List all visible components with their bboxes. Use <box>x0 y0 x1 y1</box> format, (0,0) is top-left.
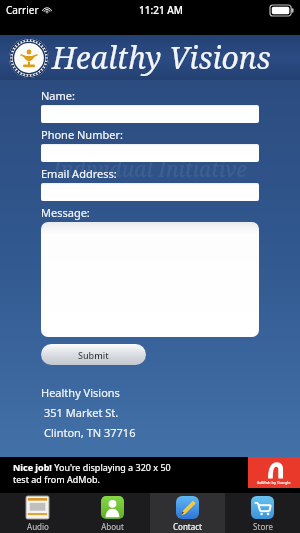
button[interactable]: Submit <box>41 344 146 365</box>
button[interactable] <box>41 105 259 123</box>
staticText: Email Address: <box>41 166 117 181</box>
button[interactable]: Store <box>225 493 300 533</box>
staticText: You're displaying a 320 x 50 <box>52 461 171 473</box>
button[interactable]: About <box>75 493 150 533</box>
button[interactable]: Audio <box>0 493 75 533</box>
staticText: Store <box>253 521 273 532</box>
staticText: Nice job! <box>13 461 52 473</box>
staticText: Individual Initiative <box>53 155 247 184</box>
staticText: Submit <box>78 349 109 361</box>
staticText: Contact <box>173 521 202 532</box>
staticText: Healthy Visions <box>52 37 271 78</box>
staticText: test ad from AdMob. <box>13 473 100 485</box>
staticText: About <box>101 521 124 532</box>
staticText: Message: <box>41 205 90 220</box>
staticText: 351 Market St. <box>44 405 119 420</box>
staticText: Phone Number: <box>41 127 123 142</box>
button[interactable]: Contact <box>150 493 225 533</box>
staticText: 11:21 AM <box>139 3 183 17</box>
staticText: AdMob by Google <box>257 480 291 485</box>
staticText: Clinton, TN 37716 <box>44 425 136 440</box>
staticText: Audio <box>27 521 49 532</box>
staticText: Name: <box>41 88 75 103</box>
button[interactable]: Nice job! <box>11 457 300 488</box>
button[interactable] <box>41 144 259 162</box>
button[interactable] <box>41 183 259 201</box>
staticText: Healthy Visions <box>41 385 120 400</box>
button[interactable] <box>41 222 259 337</box>
staticText: Carrier <box>6 3 39 17</box>
